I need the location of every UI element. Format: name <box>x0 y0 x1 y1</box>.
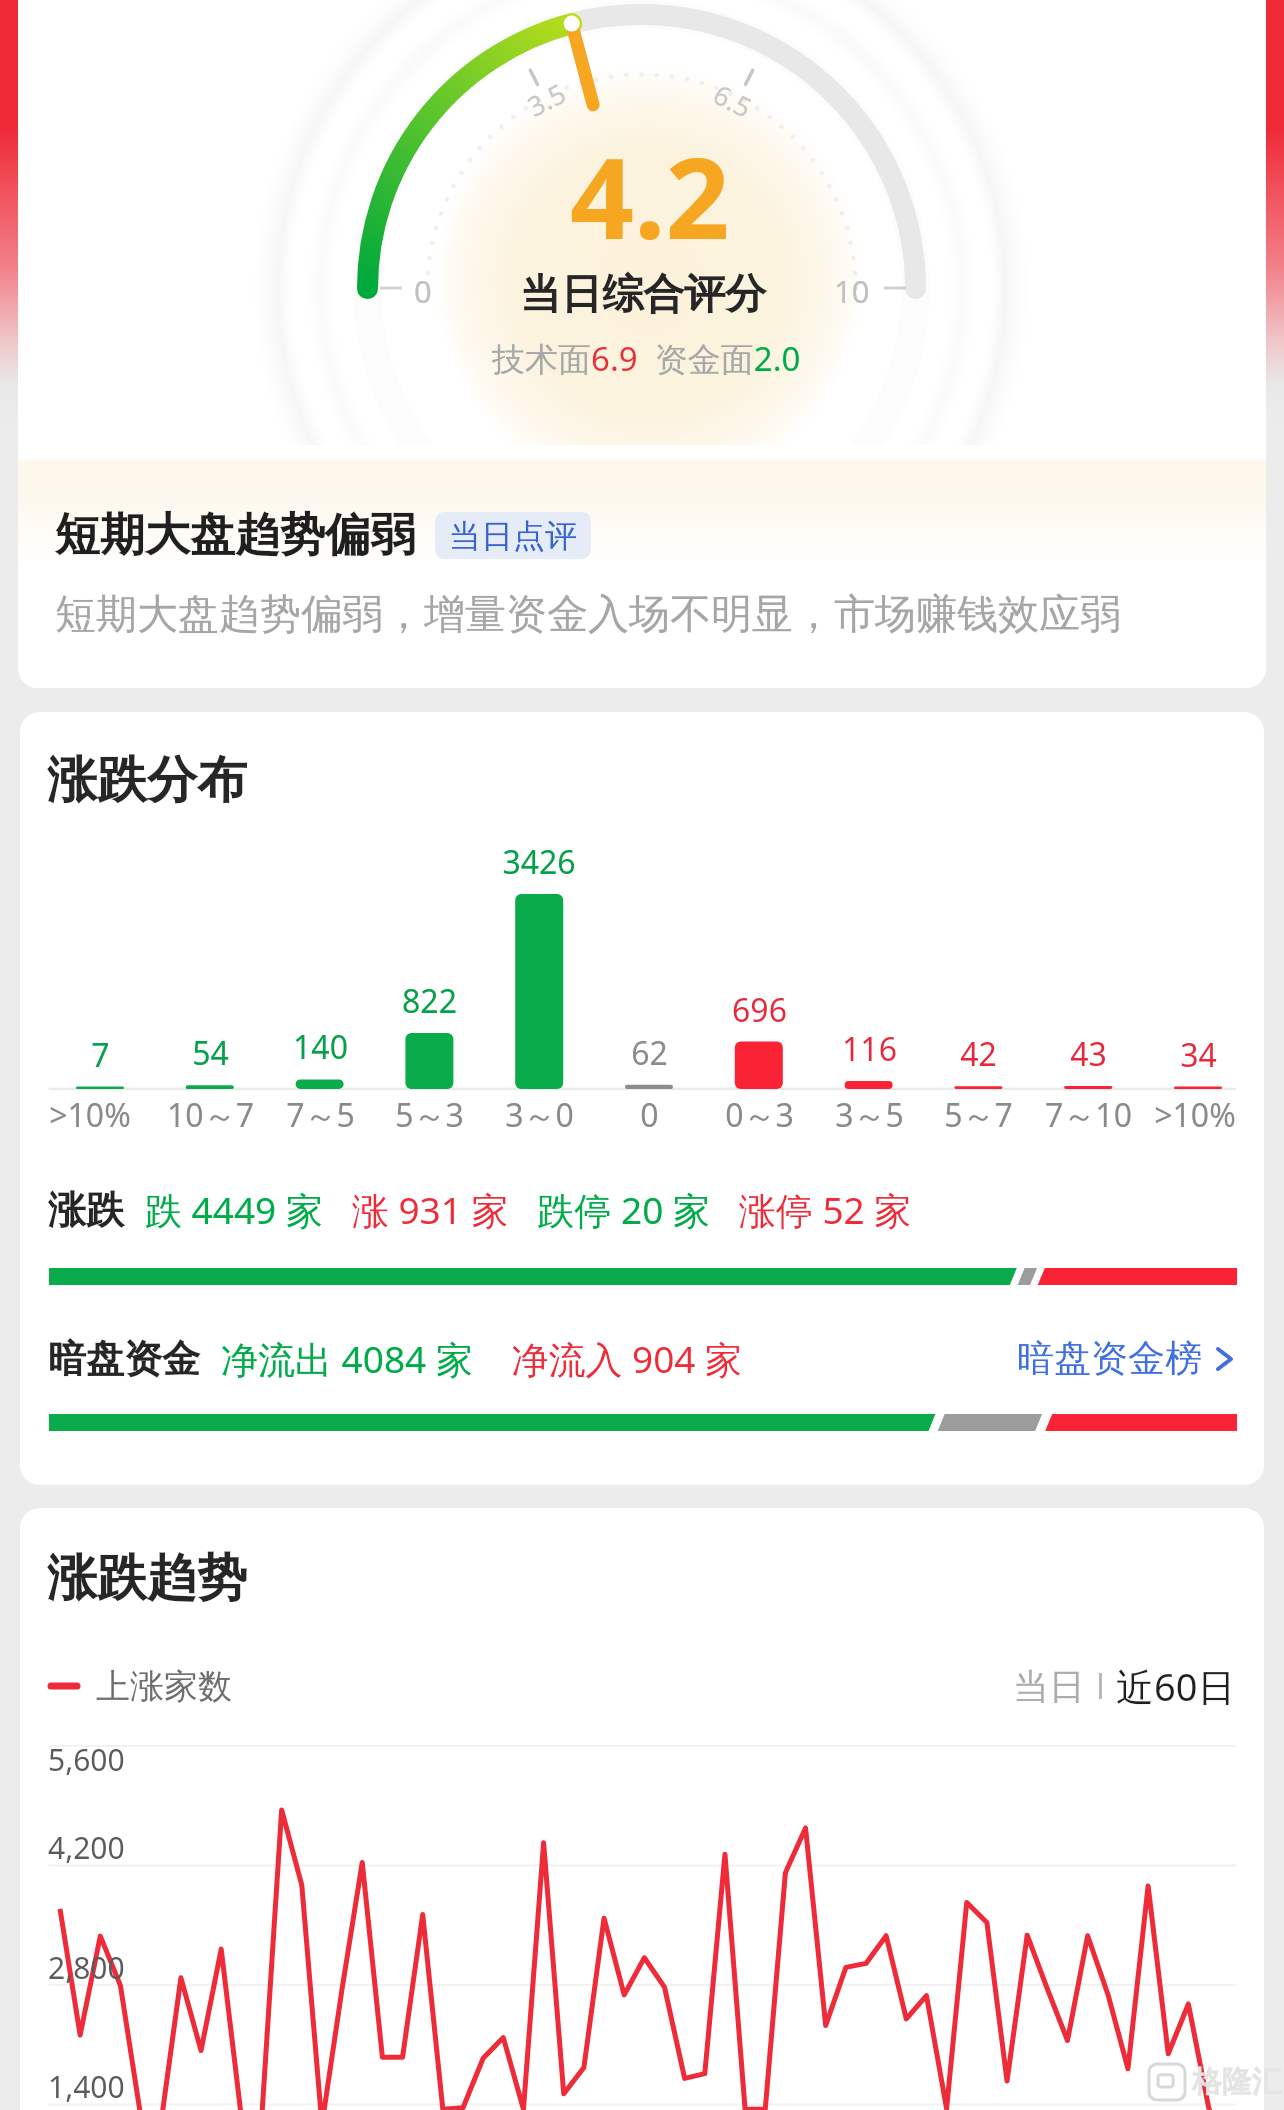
staticText: 5～7 <box>944 1093 1013 1133</box>
staticText: 5～3 <box>395 1093 464 1133</box>
staticText: 62 <box>631 1031 668 1075</box>
staticText: 3～0 <box>505 1093 574 1133</box>
staticText: 近60日 <box>1116 1660 1236 1712</box>
staticText: 10～7 <box>167 1093 254 1133</box>
staticText: >10% <box>1154 1093 1236 1133</box>
staticText: 0 <box>640 1093 659 1133</box>
staticText: 2,800 <box>48 1947 125 1988</box>
staticText: 3～5 <box>835 1093 904 1133</box>
staticText: 当日综合评分 <box>520 269 766 321</box>
staticText: 0 <box>414 270 432 312</box>
button[interactable]: 当日 <box>1013 1660 1236 1712</box>
staticText: 短期大盘趋势偏弱 <box>55 507 415 564</box>
staticText: 822 <box>402 979 457 1023</box>
staticText: 3426 <box>502 840 576 884</box>
staticText: 7～10 <box>1045 1093 1132 1133</box>
button[interactable]: 短期大盘趋势偏弱 <box>18 445 1266 688</box>
staticText: 短期大盘趋势偏弱，增量资金入场不明显，市场赚钱效应弱 <box>55 589 1121 641</box>
staticText: 净流出 4084 家 净流入 904 家 <box>221 1333 743 1384</box>
staticText: 3.5 <box>521 74 572 125</box>
staticText: 4.2 <box>570 119 730 272</box>
staticText: 当日点评 <box>449 516 577 556</box>
staticText: 涨跌分布 <box>47 749 247 812</box>
staticText: 5,600 <box>48 1739 125 1780</box>
staticText: 上涨家数 <box>96 1665 232 1708</box>
staticText: 43 <box>1070 1032 1107 1076</box>
staticText: 696 <box>732 988 787 1032</box>
staticText: 跌 4449 家 涨 931 家 跌停 20 家 涨停 52 家 <box>145 1184 912 1235</box>
staticText: 涨跌趋势 <box>47 1547 247 1610</box>
staticText: 暗盘资金榜 <box>1017 1335 1202 1382</box>
staticText: 暗盘资金 <box>48 1335 200 1383</box>
staticText: 140 <box>293 1025 348 1069</box>
staticText: 涨跌 <box>48 1186 124 1234</box>
staticText: 1,400 <box>48 2066 125 2107</box>
staticText: 0～3 <box>725 1093 794 1133</box>
staticText: >10% <box>49 1093 131 1133</box>
staticText: 116 <box>842 1027 897 1071</box>
button[interactable]: 暗盘资金榜 <box>1017 1335 1236 1382</box>
staticText: 7～5 <box>286 1093 355 1133</box>
staticText: 42 <box>960 1032 997 1076</box>
staticText: 34 <box>1180 1033 1217 1077</box>
staticText: 54 <box>192 1031 229 1075</box>
staticText: 10 <box>834 270 870 312</box>
staticText: 4,200 <box>48 1827 125 1868</box>
staticText: 技术面6.9 资金面2.0 <box>492 336 801 381</box>
staticText: 当日 <box>1013 1664 1085 1709</box>
staticText: 7 <box>91 1033 110 1077</box>
staticText: 6.5 <box>707 75 759 126</box>
staticText: 格隆汇 <box>1192 2063 1282 2101</box>
